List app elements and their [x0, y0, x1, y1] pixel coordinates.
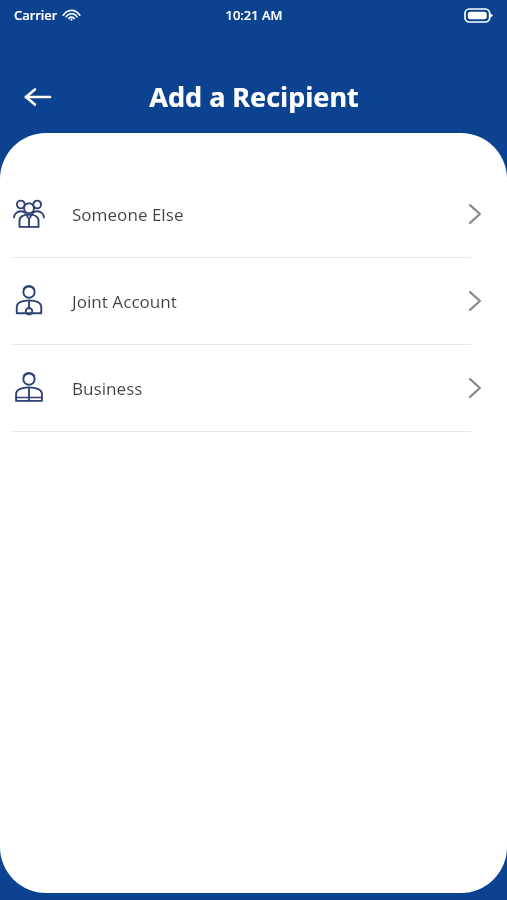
staticText: Carrier — [14, 6, 58, 24]
staticText: Someone Else — [72, 203, 469, 226]
button[interactable]: Someone Else — [0, 171, 507, 257]
staticText: Add a Recipient — [149, 78, 359, 115]
button[interactable]: Back — [12, 71, 64, 123]
staticText: Joint Account — [72, 290, 469, 313]
staticText: 10:21 AM — [225, 6, 283, 24]
button[interactable]: Business — [0, 345, 507, 431]
button[interactable]: Joint Account — [0, 258, 507, 344]
staticText: Business — [72, 377, 469, 400]
